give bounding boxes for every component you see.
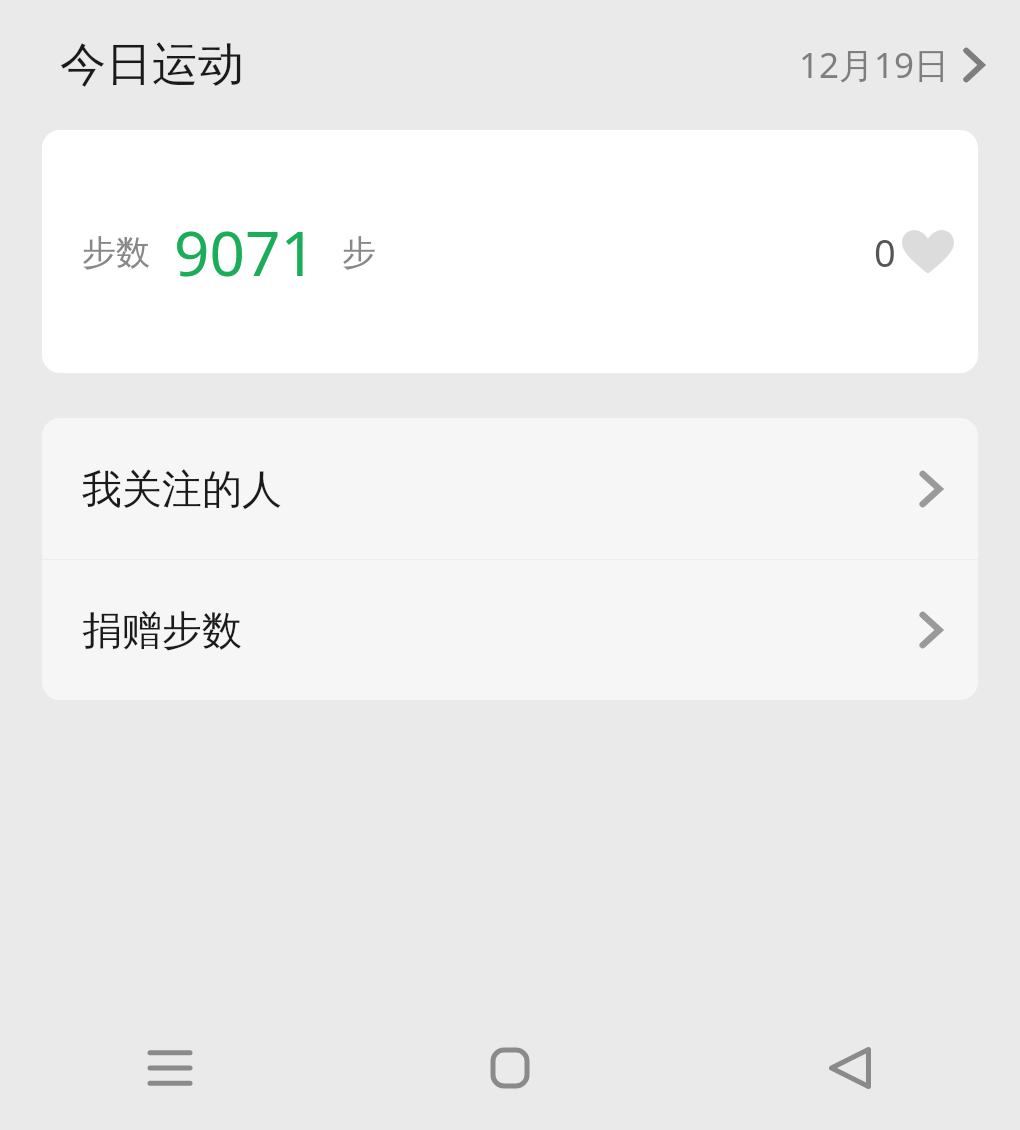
staticText: 捐赠步数	[82, 605, 242, 655]
button[interactable]: 12月19日	[799, 41, 986, 89]
staticText: 今日运动	[60, 36, 244, 94]
button[interactable]: Likes	[874, 226, 954, 278]
button[interactable]: Back	[680, 1006, 1020, 1130]
staticText: 9071	[174, 210, 316, 294]
button[interactable]: 步数	[42, 130, 978, 373]
staticText: 我关注的人	[82, 464, 282, 514]
staticText: 12月19日	[799, 41, 950, 89]
button[interactable]: 我关注的人	[42, 418, 978, 559]
button[interactable]: 捐赠步数	[42, 560, 978, 700]
staticText: 步	[342, 231, 376, 274]
button[interactable]: Recent apps	[0, 1006, 340, 1130]
button[interactable]: Home	[340, 1006, 680, 1130]
staticText: 0	[874, 226, 896, 278]
staticText: 步数	[82, 231, 150, 274]
